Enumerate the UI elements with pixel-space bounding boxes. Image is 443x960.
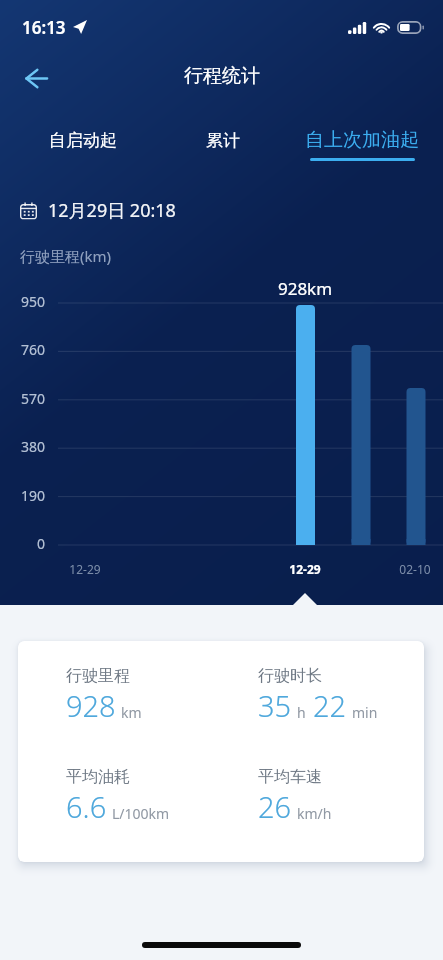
staticText: 26: [258, 787, 292, 826]
staticText: 190: [0, 486, 45, 505]
staticText: 行程统计: [184, 64, 260, 88]
staticText: 35: [258, 686, 292, 725]
staticText: 12-29: [45, 561, 125, 577]
staticText: 行驶里程: [66, 666, 130, 686]
staticText: 760: [0, 340, 45, 359]
staticText: 12-29: [265, 561, 345, 577]
staticText: 928: [66, 686, 116, 725]
staticText: 行驶时长: [258, 666, 322, 686]
staticText: 0: [0, 534, 45, 553]
staticText: L/100km: [112, 804, 170, 823]
staticText: 928km: [245, 277, 365, 300]
staticText: 950: [0, 292, 45, 311]
staticText: 22: [313, 686, 347, 725]
button[interactable]: 自启动起: [13, 119, 153, 165]
button[interactable]: Back: [14, 56, 58, 100]
staticText: km/h: [297, 804, 332, 823]
staticText: 570: [0, 389, 45, 408]
staticText: km: [121, 703, 142, 722]
staticText: h: [297, 703, 306, 722]
staticText: 16:13: [22, 16, 66, 39]
button[interactable]: 自上次加油起: [292, 119, 432, 165]
staticText: 平均油耗: [66, 767, 130, 787]
button[interactable]: 累计: [153, 119, 293, 165]
staticText: 380: [0, 437, 45, 456]
staticText: 自上次加油起: [305, 128, 419, 152]
staticText: 02-10: [375, 561, 443, 577]
staticText: 平均车速: [258, 767, 322, 787]
staticText: min: [352, 703, 378, 722]
staticText: 6.6: [66, 787, 107, 826]
staticText: 累计: [206, 130, 240, 151]
staticText: 12月29日 20:18: [48, 198, 176, 223]
staticText: 自启动起: [49, 130, 117, 151]
staticText: 行驶里程(km): [20, 246, 112, 266]
